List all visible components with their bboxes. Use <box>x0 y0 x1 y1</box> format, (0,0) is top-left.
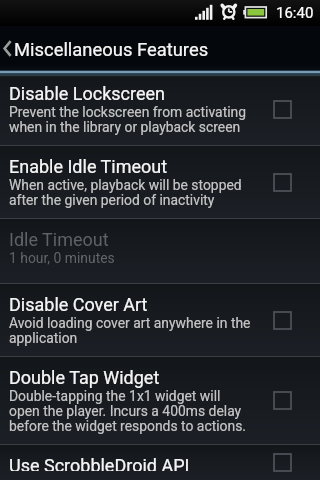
staticText: Avoid loading cover art anywhere in the … <box>9 315 251 347</box>
other: Toggle <box>273 453 292 472</box>
button[interactable]: Use ScrobbleDroid API <box>0 445 320 480</box>
other: Toggle <box>273 391 292 410</box>
staticText: 1 hour, 0 minutes <box>9 250 115 266</box>
staticText: When active, playback will be stopped af… <box>9 177 242 209</box>
staticText: Double-tapping the 1x1 widget will open … <box>9 388 247 435</box>
button[interactable]: Idle Timeout <box>0 219 320 283</box>
staticText: Double Tap Widget <box>9 367 160 388</box>
staticText: Use ScrobbleDroid API <box>9 455 190 471</box>
button[interactable]: Disable Cover Art <box>0 284 320 356</box>
button[interactable]: Double Tap Widget <box>0 357 320 444</box>
button[interactable]: Navigate up <box>0 26 320 71</box>
staticText: Idle Timeout <box>9 229 109 250</box>
staticText: Disable Cover Art <box>9 294 148 315</box>
other: Toggle <box>273 100 292 119</box>
staticText: Miscellaneous Features <box>14 39 209 61</box>
other: Toggle <box>273 173 292 192</box>
staticText: Prevent the lockscreen from activating w… <box>9 104 247 136</box>
staticText: 16:40 <box>276 4 314 22</box>
other: Toggle <box>273 311 292 330</box>
staticText: Enable Idle Timeout <box>9 156 168 177</box>
other: Navigate up <box>0 26 320 71</box>
button[interactable]: Enable Idle Timeout <box>0 146 320 218</box>
button[interactable]: Disable Lockscreen <box>0 73 320 145</box>
staticText: Disable Lockscreen <box>9 83 165 104</box>
